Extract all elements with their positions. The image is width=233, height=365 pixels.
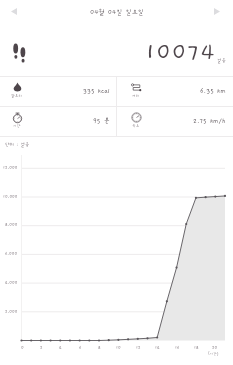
staticText: 4,000: [5, 280, 18, 285]
staticText: 6.35 km: [200, 87, 226, 94]
staticText: 95 분: [93, 117, 110, 124]
staticText: 0: [21, 345, 24, 350]
staticText: 8: [98, 345, 101, 350]
staticText: 12,000: [3, 165, 18, 170]
staticText: 2.75 km/h: [193, 117, 226, 124]
staticText: 속도: [132, 124, 140, 129]
staticText: 8,000: [5, 222, 18, 227]
staticText: 칼로리: [11, 94, 23, 99]
staticText: 걸음: [217, 58, 227, 63]
staticText: 04월 04일 일요일: [90, 8, 144, 15]
staticText: 2,000: [5, 309, 18, 314]
staticText: 거리: [132, 94, 140, 99]
button[interactable]: 거리: [117, 77, 233, 106]
button[interactable]: 시간: [0, 107, 116, 136]
staticText: 6: [79, 345, 82, 350]
button[interactable]: 속도: [117, 107, 233, 136]
staticText: 2: [40, 345, 43, 350]
staticText: 12: [136, 345, 141, 350]
button[interactable]: 10074: [0, 22, 233, 76]
staticText: 14: [155, 345, 160, 350]
staticText: 시간: [13, 124, 21, 129]
button[interactable]: 이전 날짜: [6, 3, 22, 19]
staticText: 4: [59, 345, 62, 350]
staticText: (시간): [208, 352, 219, 356]
staticText: 10074: [145, 39, 216, 65]
staticText: 18: [194, 345, 199, 350]
staticText: 6,000: [5, 251, 18, 256]
staticText: 10: [116, 345, 121, 350]
button[interactable]: 칼로리: [0, 77, 116, 106]
staticText: 16: [175, 345, 180, 350]
staticText: 20: [212, 345, 218, 350]
staticText: 335 kcal: [83, 87, 110, 94]
button[interactable]: 다음 날짜: [209, 3, 225, 19]
staticText: 10,000: [3, 194, 18, 199]
staticText: 단위 : 걸음: [5, 142, 30, 147]
